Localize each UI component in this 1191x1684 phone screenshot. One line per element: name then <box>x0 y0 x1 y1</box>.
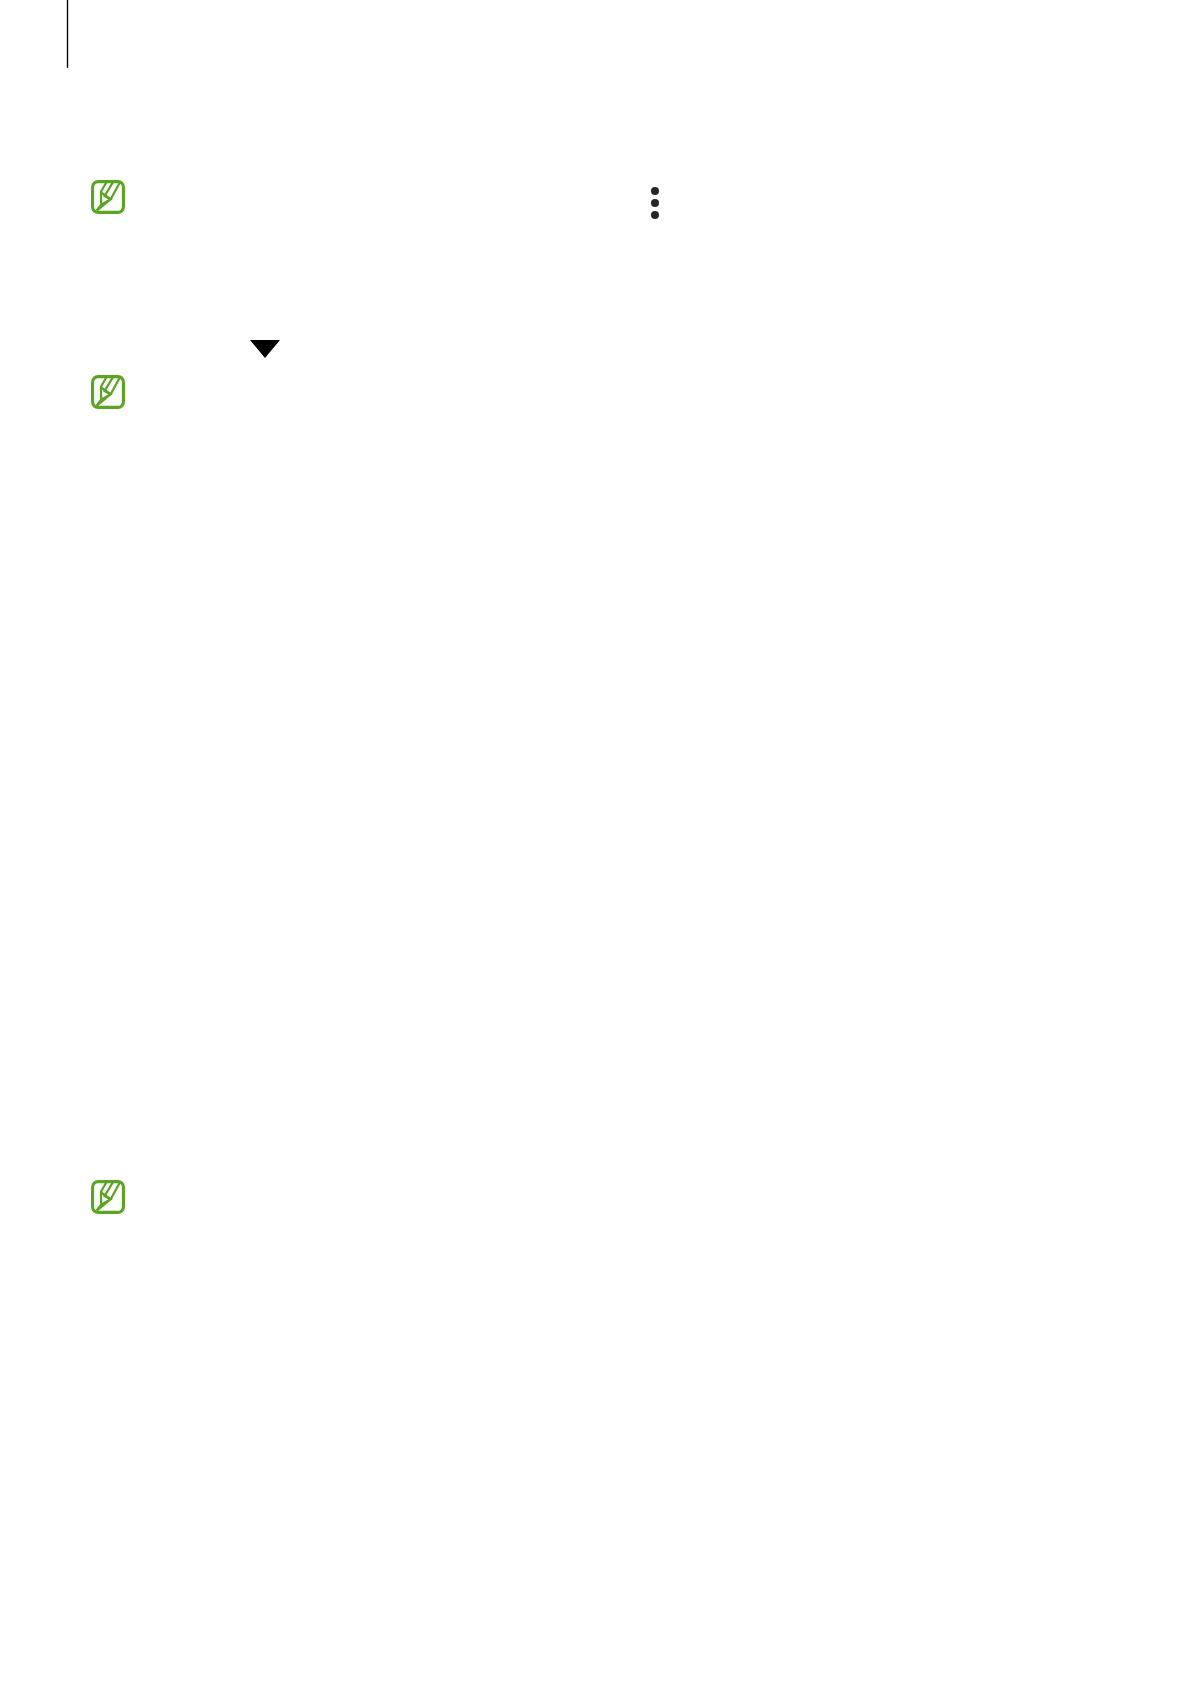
button[interactable]: Expand <box>250 340 280 358</box>
button[interactable]: Note <box>91 1180 125 1214</box>
button[interactable]: Note <box>91 375 125 409</box>
button[interactable]: Note <box>91 180 125 214</box>
button[interactable]: More options <box>648 187 662 219</box>
